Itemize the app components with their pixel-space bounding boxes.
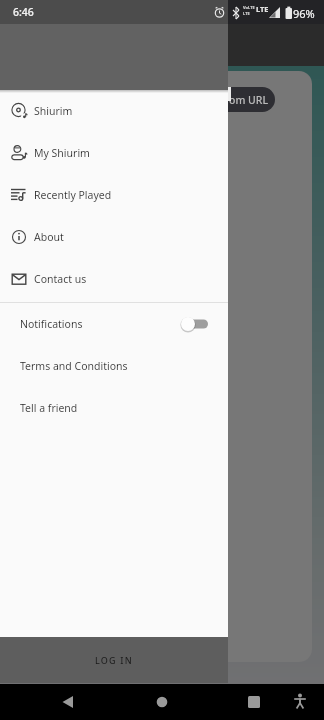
button[interactable]: Shiurim xyxy=(0,90,228,132)
button[interactable]: About xyxy=(0,216,228,258)
staticText: Recently Played xyxy=(34,188,112,202)
button[interactable]: LOG IN xyxy=(0,637,228,683)
button[interactable] xyxy=(56,684,80,720)
button[interactable]: Recently Played xyxy=(0,174,228,216)
button[interactable]: Notifications xyxy=(0,303,228,345)
button[interactable]: Contact us xyxy=(0,258,228,300)
staticText: LOG IN xyxy=(95,654,133,666)
staticText: Terms and Conditions xyxy=(20,359,128,373)
button[interactable]: My Shiurim xyxy=(0,132,228,174)
staticText: Shiurim xyxy=(34,104,73,118)
staticText: LTE xyxy=(243,11,250,16)
staticText: om URL xyxy=(229,93,269,107)
button[interactable]: om URL xyxy=(213,87,275,112)
button[interactable]: Terms and Conditions xyxy=(0,345,228,387)
button[interactable]: Tell a friend xyxy=(0,387,228,429)
staticText: My Shiurim xyxy=(34,146,90,160)
staticText: Tell a friend xyxy=(20,401,78,415)
staticText: About xyxy=(34,230,64,244)
staticText: Notifications xyxy=(20,317,83,331)
button[interactable] xyxy=(242,684,266,720)
staticText: Contact us xyxy=(34,272,87,286)
button[interactable] xyxy=(150,684,174,720)
staticText: LTE xyxy=(256,4,269,14)
staticText: VoLTE xyxy=(243,5,255,10)
button[interactable] xyxy=(288,684,312,720)
staticText: 6:46 xyxy=(13,5,34,19)
staticText: 96% xyxy=(293,6,315,21)
